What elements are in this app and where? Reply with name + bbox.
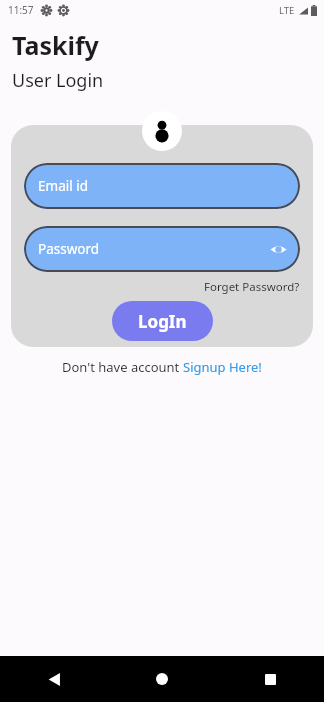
staticText: Forget Password? <box>204 279 300 295</box>
staticText: Password <box>38 240 100 258</box>
button[interactable]: Forget Password? <box>204 279 300 295</box>
staticText: Taskify <box>12 28 99 62</box>
button[interactable]: Back <box>0 656 108 702</box>
button[interactable]: LogIn <box>112 301 213 341</box>
staticText: Email id <box>38 177 88 195</box>
button[interactable]: Password <box>24 226 300 272</box>
button[interactable]: Email id <box>24 163 300 209</box>
button[interactable]: Home <box>108 656 216 702</box>
staticText: Signup Here! <box>183 358 262 376</box>
staticText: LTE <box>279 4 295 17</box>
button[interactable]: Show password <box>267 238 289 260</box>
staticText: LogIn <box>138 310 187 333</box>
button[interactable]: Signup Here! <box>183 358 262 376</box>
staticText: User Login <box>12 68 104 93</box>
button[interactable]: Recent apps <box>216 656 324 702</box>
staticText: Don't have account <box>62 358 183 376</box>
staticText: 11:57 <box>8 3 34 17</box>
other: User avatar <box>142 111 182 151</box>
